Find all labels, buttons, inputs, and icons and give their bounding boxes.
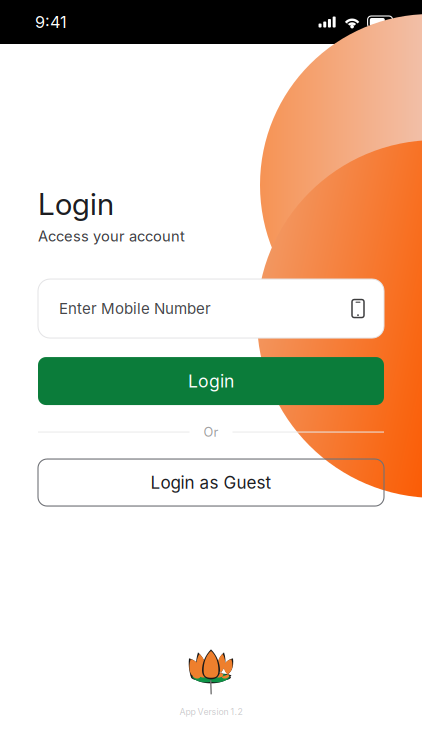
staticText: App Version 1.2: [179, 706, 242, 717]
staticText: Login as Guest: [150, 472, 271, 493]
staticText: Or: [203, 424, 218, 440]
button[interactable]: Login as Guest: [38, 459, 384, 506]
button[interactable]: Enter Mobile Number: [38, 279, 384, 338]
staticText: Enter Mobile Number: [59, 299, 211, 318]
staticText: 9:41: [35, 12, 67, 32]
staticText: Access your account: [38, 227, 185, 245]
button[interactable]: Login: [38, 357, 384, 405]
staticText: Login: [38, 186, 114, 222]
staticText: Login: [188, 370, 234, 392]
